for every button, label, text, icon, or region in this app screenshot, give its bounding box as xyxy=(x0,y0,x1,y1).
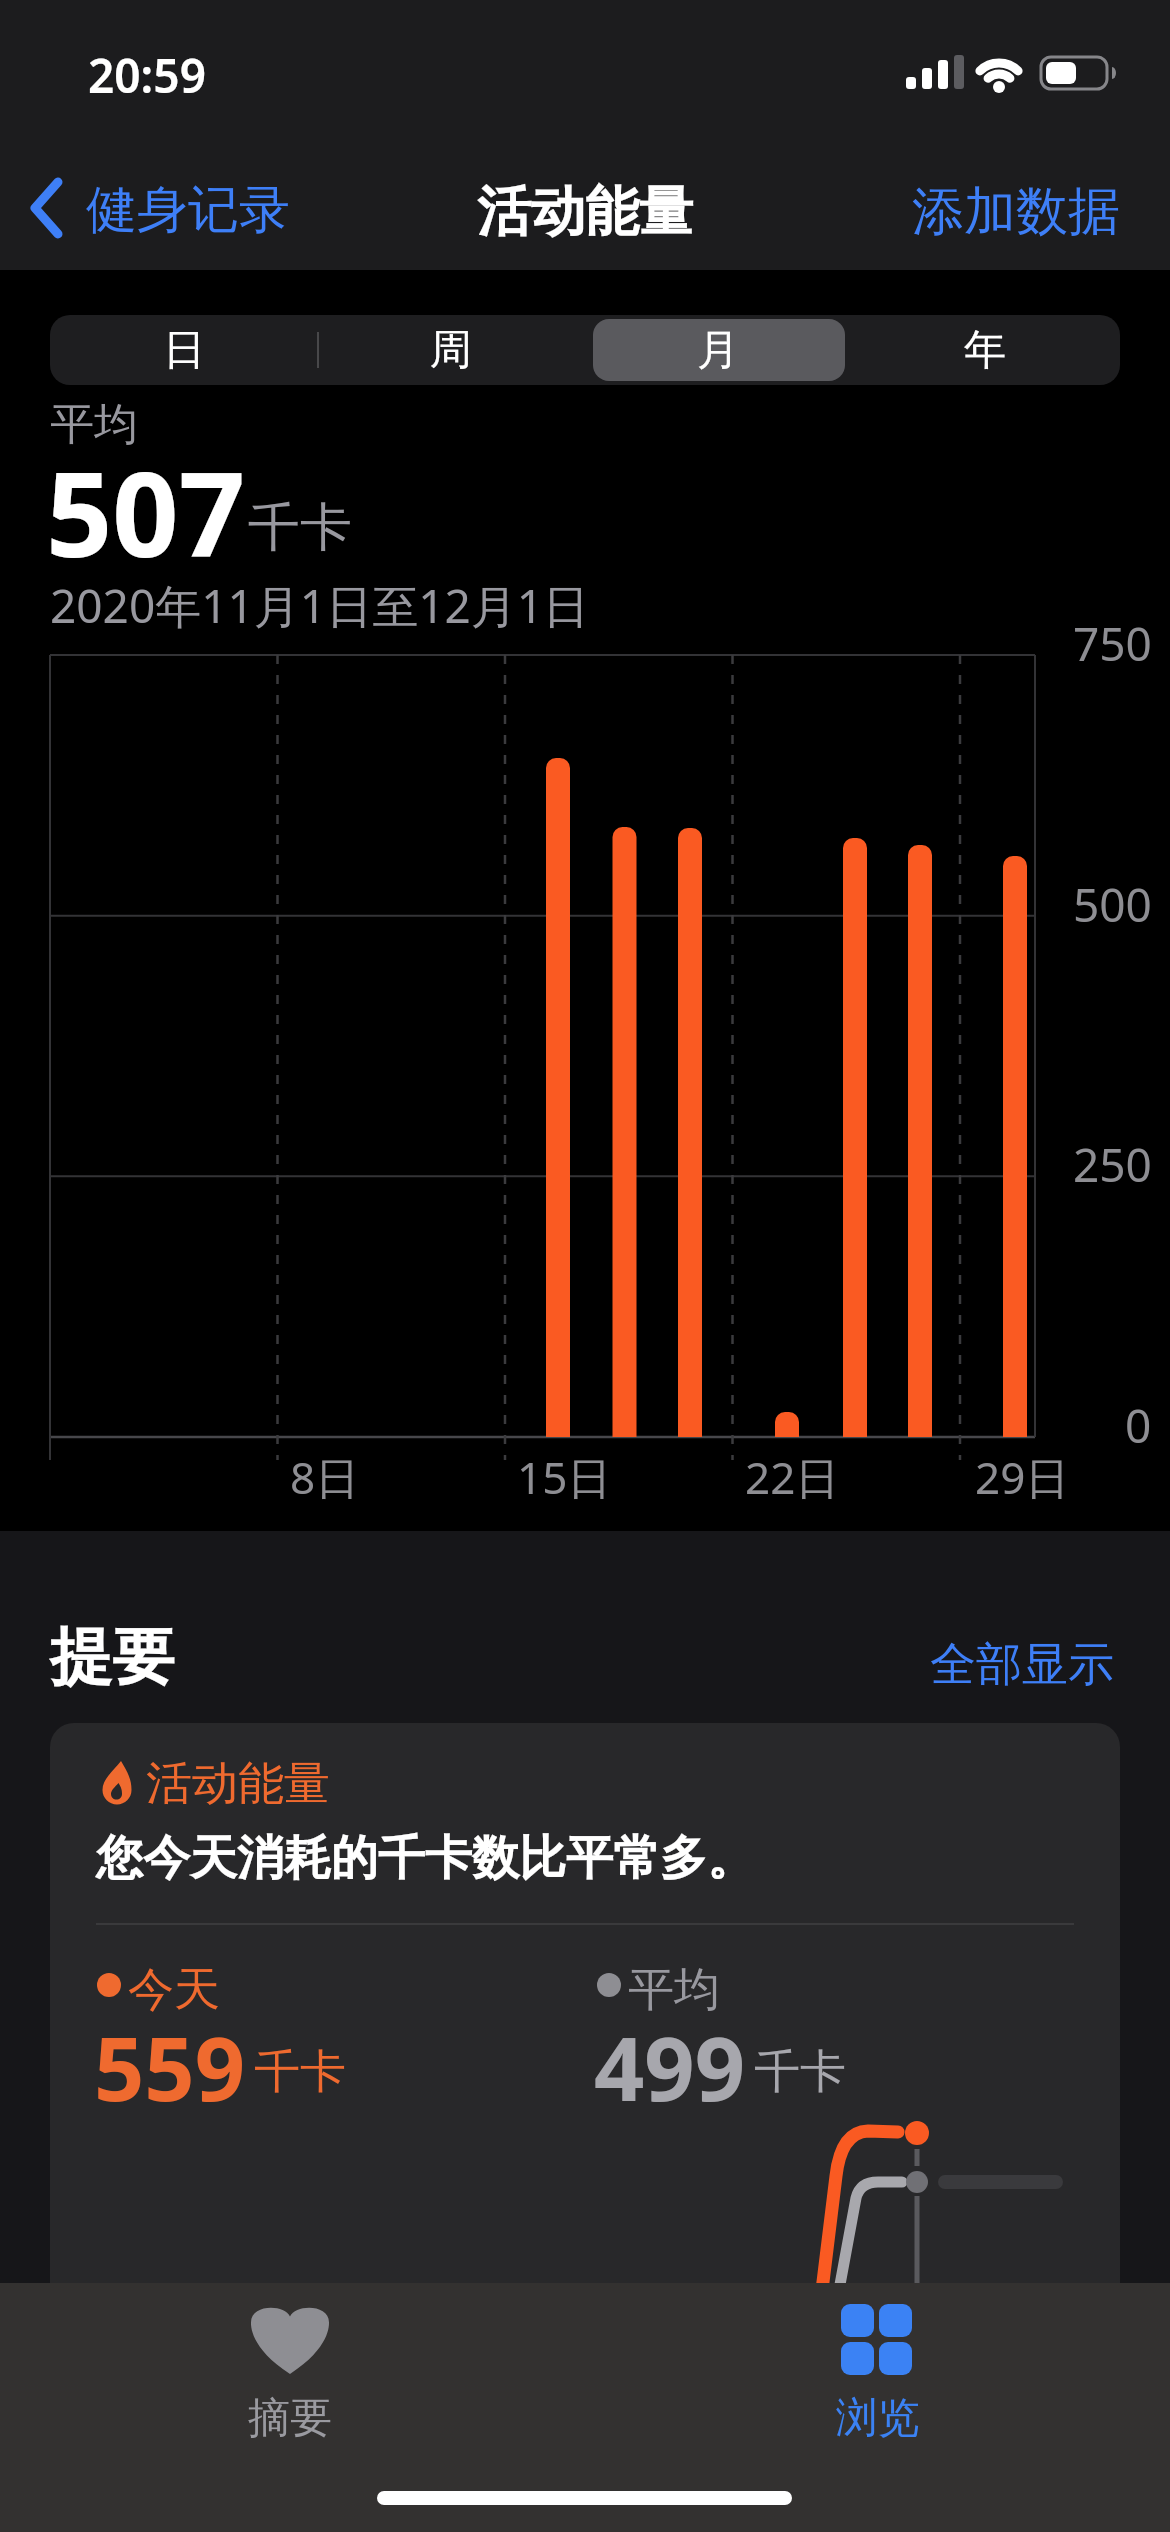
button[interactable]: 全部显示 xyxy=(930,1636,1114,1694)
button[interactable]: 活动能量 xyxy=(50,1723,1120,2532)
staticText: 2020年11月1日至12月1日 xyxy=(50,574,590,637)
staticText: 平均 xyxy=(628,1961,720,2019)
staticText: 日 xyxy=(163,324,205,377)
staticText: 15日 xyxy=(517,1447,612,1507)
staticText: 添加数据 xyxy=(912,179,1120,245)
staticText: 年 xyxy=(964,324,1006,377)
button[interactable]: 年 xyxy=(851,315,1119,385)
staticText: 摘要 xyxy=(248,2392,332,2445)
staticText: 今天 xyxy=(128,1961,220,2019)
staticText: 千卡 xyxy=(754,2043,846,2101)
staticText: 月 xyxy=(697,324,739,377)
staticText: 活动能量 xyxy=(477,178,693,246)
staticText: 0 xyxy=(1125,1394,1152,1457)
staticText: 8日 xyxy=(290,1447,360,1507)
staticText: 20:59 xyxy=(88,44,206,107)
staticText: 提要 xyxy=(50,1618,174,1696)
staticText: 您今天消耗的千卡数比平常多。 xyxy=(96,1829,754,1888)
staticText: 750 xyxy=(1073,612,1152,675)
staticText: 250 xyxy=(1073,1133,1152,1196)
button[interactable]: 周 xyxy=(317,315,585,385)
staticText: 平均 xyxy=(50,397,138,452)
staticText: 500 xyxy=(1073,873,1152,936)
button[interactable]: 月 xyxy=(584,315,852,385)
button[interactable]: 浏览 xyxy=(788,2292,968,2442)
button[interactable]: 摘要 xyxy=(200,2292,380,2442)
button[interactable]: 添加数据 xyxy=(912,179,1120,245)
staticText: 活动能量 xyxy=(146,1755,330,1813)
staticText: 浏览 xyxy=(836,2392,920,2445)
staticText: 559 xyxy=(94,2007,246,2127)
staticText: 千卡 xyxy=(254,2043,346,2101)
staticText: 健身记录 xyxy=(86,178,290,242)
button[interactable]: 日 xyxy=(50,315,318,385)
button[interactable]: 健身记录 xyxy=(24,170,294,246)
staticText: 千卡 xyxy=(248,495,352,561)
staticText: 29日 xyxy=(975,1447,1070,1507)
staticText: 全部显示 xyxy=(930,1636,1114,1694)
staticText: 507 xyxy=(46,433,246,591)
staticText: 499 xyxy=(594,2007,746,2127)
staticText: 22日 xyxy=(745,1447,840,1507)
staticText: 周 xyxy=(430,324,472,377)
